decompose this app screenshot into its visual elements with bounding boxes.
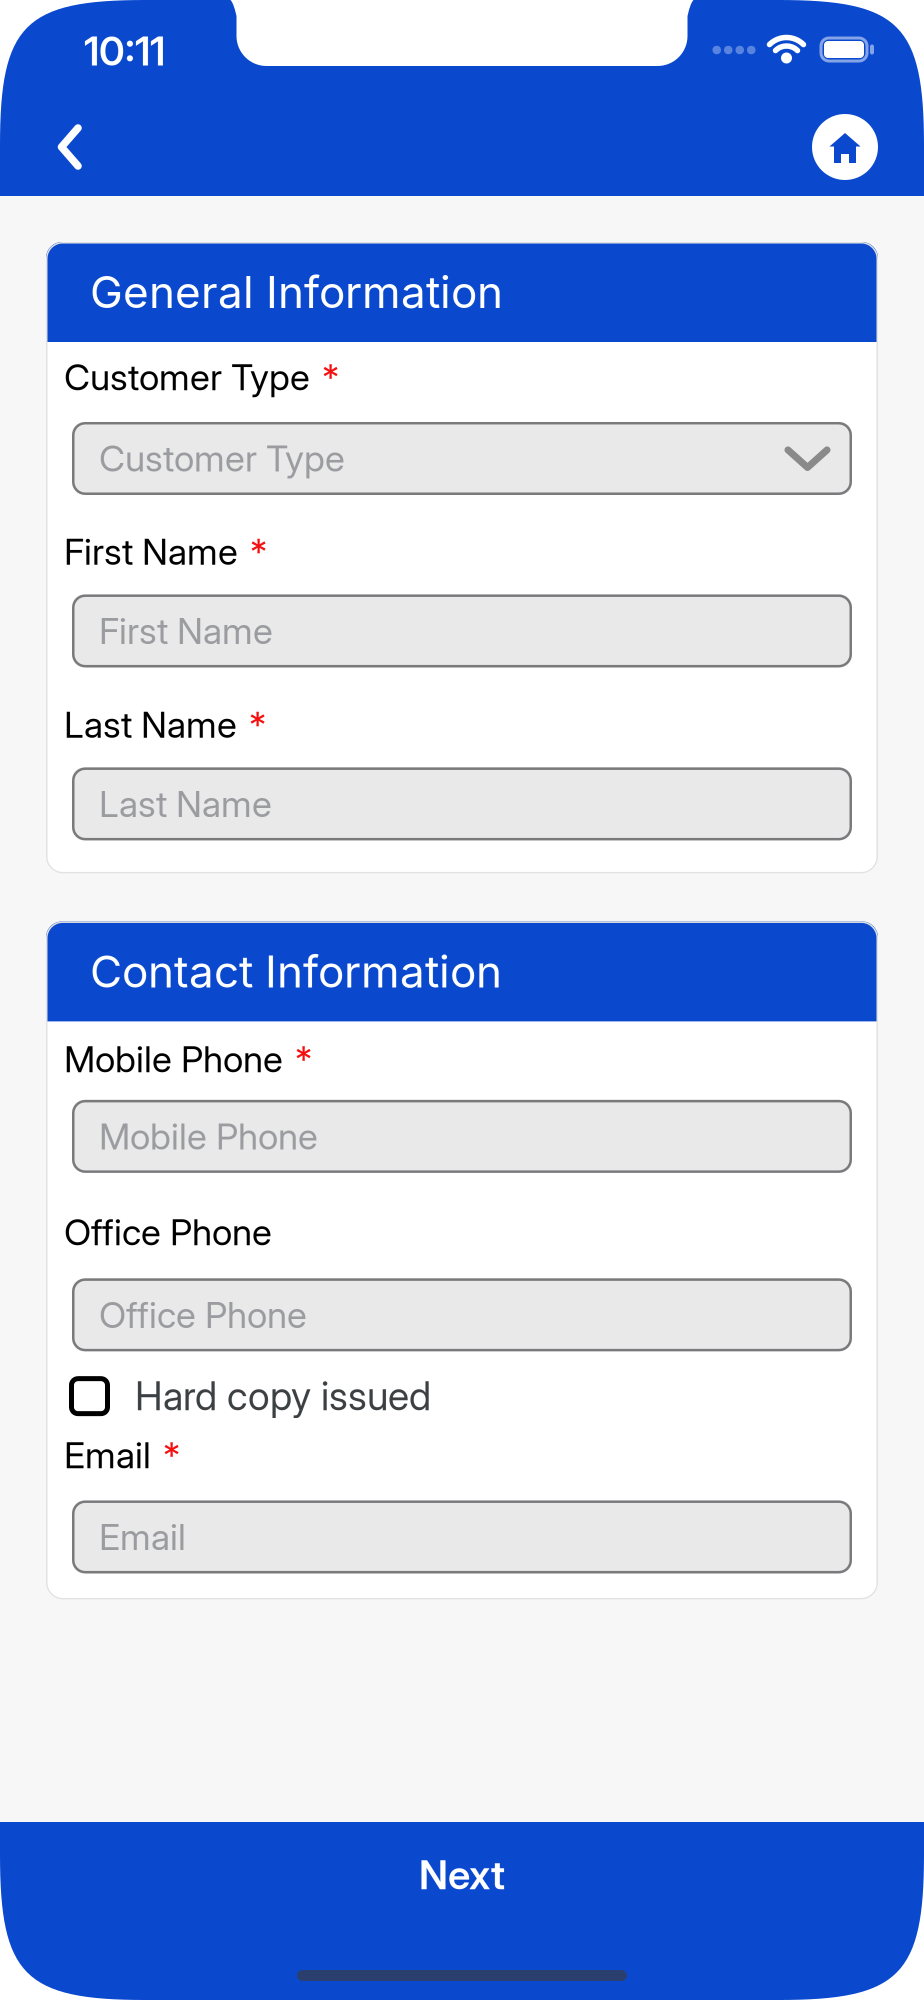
staticText: Next: [419, 1851, 505, 1898]
staticText: Last Name: [99, 783, 272, 825]
staticText: *: [163, 1434, 180, 1476]
staticText: *: [295, 1038, 312, 1080]
button[interactable]: First Name: [72, 594, 852, 667]
button[interactable]: Last Name: [72, 767, 852, 840]
button[interactable]: Customer Type: [72, 422, 852, 495]
staticText: First Name: [99, 610, 273, 652]
button[interactable]: Office Phone: [72, 1278, 852, 1351]
staticText: Office Phone: [64, 1211, 272, 1253]
button[interactable]: Mobile Phone: [72, 1100, 852, 1173]
staticText: *: [249, 703, 266, 746]
staticText: 10:11: [84, 27, 165, 75]
staticText: *: [250, 530, 267, 573]
staticText: First Name: [64, 530, 238, 573]
staticText: Contact Information: [90, 945, 502, 997]
button[interactable]: Next: [0, 1822, 924, 1952]
button[interactable]: Email: [72, 1500, 852, 1573]
staticText: Customer Type: [64, 356, 310, 398]
button[interactable]: Home: [812, 114, 924, 180]
staticText: Mobile Phone: [64, 1038, 283, 1080]
staticText: Mobile Phone: [99, 1115, 318, 1158]
button[interactable]: Hard copy issued: [46, 1373, 431, 1419]
staticText: Hard copy issued: [135, 1373, 431, 1419]
staticText: *: [322, 356, 339, 398]
staticText: Customer Type: [99, 437, 345, 480]
staticText: Email: [99, 1516, 186, 1558]
staticText: Email: [64, 1434, 151, 1476]
staticText: Office Phone: [99, 1294, 307, 1336]
button[interactable]: Back: [0, 125, 112, 168]
staticText: General Information: [90, 266, 503, 318]
staticText: Last Name: [64, 703, 237, 746]
